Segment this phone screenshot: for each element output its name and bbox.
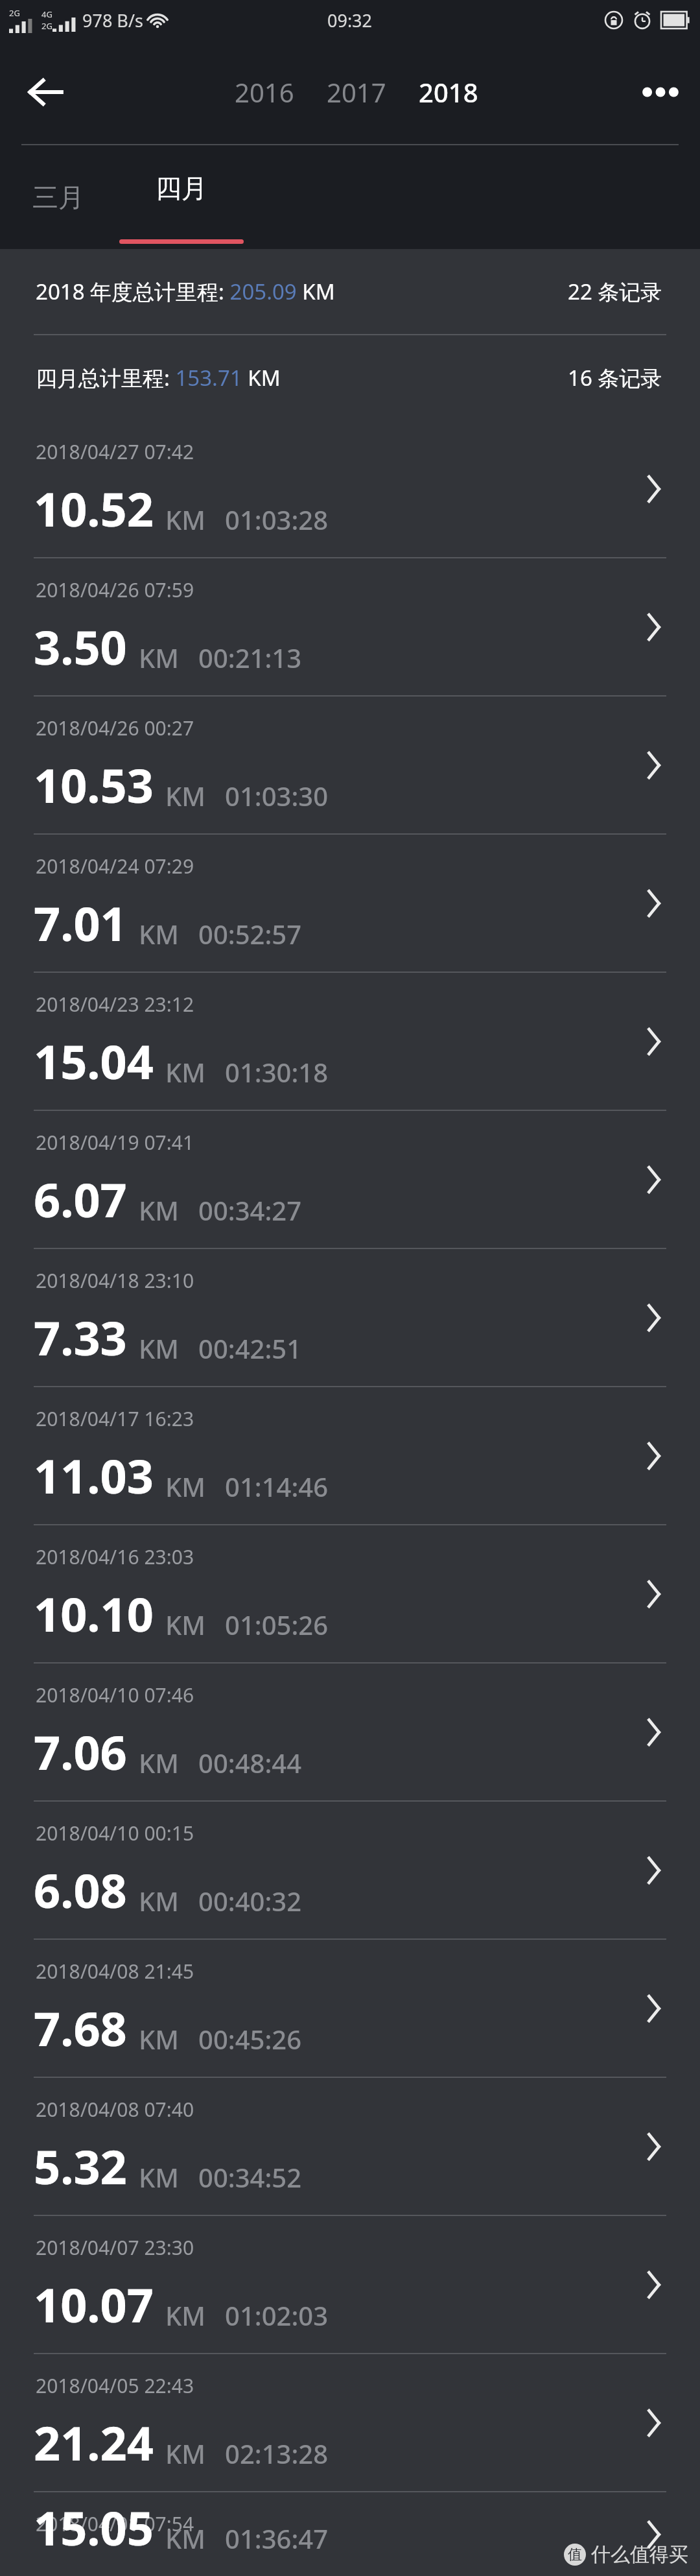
staticText: 2018/04/08 21:45: [36, 1958, 194, 1985]
staticText: 7.33: [34, 1306, 127, 1369]
staticText: 2018/04/10 00:15: [36, 1820, 194, 1846]
button[interactable]: 2018/04/10 00:15: [0, 1802, 700, 1938]
staticText: 四月总计里程: 153.71 KM: [36, 363, 281, 392]
staticText: 01:02:03: [225, 2298, 329, 2333]
button[interactable]: 2018/04/19 07:41: [0, 1111, 700, 1248]
staticText: 2018/04/08 07:40: [36, 2096, 194, 2123]
other: Open run detail: [638, 473, 670, 505]
staticText: 00:45:26: [198, 2021, 302, 2057]
staticText: 2017: [327, 75, 386, 110]
staticText: 00:40:32: [198, 1883, 302, 1918]
staticText: 16 条记录: [568, 363, 662, 392]
button[interactable]: 2017: [323, 68, 390, 116]
other: Open run detail: [638, 887, 670, 920]
staticText: 10.52: [34, 477, 154, 540]
other: Open run detail: [638, 1578, 670, 1610]
staticText: 00:34:52: [198, 2160, 302, 2195]
staticText: 三月: [32, 181, 84, 213]
staticText: KM: [139, 640, 179, 675]
staticText: 6.07: [34, 1167, 127, 1231]
staticText: 2018/04/16 23:03: [36, 1544, 194, 1570]
staticText: 2018/04/05 22:43: [36, 2372, 194, 2399]
button[interactable]: More options: [633, 64, 688, 120]
staticText: 11.03: [34, 1444, 154, 1507]
staticText: KM: [139, 916, 179, 951]
button[interactable]: 三月: [13, 145, 104, 249]
button[interactable]: 2018/04/23 23:12: [0, 973, 700, 1110]
staticText: 2018/04/10 07:46: [36, 1682, 194, 1708]
staticText: 2018/04/19 07:41: [36, 1129, 194, 1156]
staticText: 2016: [235, 75, 294, 110]
button[interactable]: 2018/04/07 23:30: [0, 2216, 700, 2353]
button[interactable]: 2018/04/26 07:59: [0, 558, 700, 695]
staticText: 10.07: [34, 2272, 154, 2336]
button[interactable]: Back: [18, 64, 74, 120]
staticText: 01:03:30: [225, 778, 329, 813]
button[interactable]: 2018/04/05 22:43: [0, 2354, 700, 2491]
other: Open run detail: [638, 1716, 670, 1748]
staticText: 2018 年度总计里程: 205.09 KM: [36, 277, 335, 306]
button[interactable]: 2016: [231, 68, 298, 116]
other: Open run detail: [638, 1163, 670, 1196]
button[interactable]: 2018/04/08 21:45: [0, 1940, 700, 2077]
button[interactable]: 2018/04/10 07:46: [0, 1664, 700, 1800]
staticText: 21.24: [34, 2411, 154, 2474]
staticText: 什么值得买: [591, 2542, 688, 2567]
other: Open run detail: [638, 749, 670, 781]
staticText: KM: [165, 1469, 205, 1504]
staticText: 978 B/s: [82, 8, 143, 32]
button[interactable]: 2018/04/01 07:54: [0, 2492, 700, 2576]
staticText: KM: [139, 2160, 179, 2195]
button[interactable]: 2018/04/17 16:23: [0, 1387, 700, 1524]
staticText: 7.01: [34, 891, 127, 955]
staticText: KM: [165, 2436, 205, 2471]
staticText: KM: [165, 1055, 205, 1090]
other: Open run detail: [638, 2269, 670, 2301]
other: Open run detail: [638, 1302, 670, 1334]
staticText: 22 条记录: [568, 277, 662, 306]
staticText: 00:52:57: [198, 916, 302, 951]
staticText: KM: [165, 2521, 205, 2556]
other: Open run detail: [638, 2518, 670, 2551]
staticText: 5.32: [34, 2134, 127, 2198]
staticText: 09:32: [327, 8, 373, 32]
staticText: 01:03:28: [225, 502, 329, 537]
staticText: KM: [139, 1331, 179, 1366]
other: Open run detail: [638, 611, 670, 643]
staticText: 2018: [419, 75, 478, 110]
button[interactable]: 2018/04/16 23:03: [0, 1525, 700, 1662]
staticText: 2G: [41, 20, 52, 32]
other: Open run detail: [638, 1854, 670, 1887]
button[interactable]: 四月总计里程: 153.71 KM: [0, 335, 700, 420]
button[interactable]: 四月: [117, 145, 246, 249]
staticText: KM: [165, 2298, 205, 2333]
staticText: 00:34:27: [198, 1193, 302, 1228]
staticText: KM: [139, 1883, 179, 1918]
staticText: 00:42:51: [198, 1331, 302, 1366]
button[interactable]: 2018: [415, 68, 482, 116]
button[interactable]: 2018/04/26 00:27: [0, 697, 700, 833]
staticText: 值: [568, 2546, 582, 2564]
staticText: 15.04: [34, 1029, 154, 1093]
staticText: 2018/04/23 23:12: [36, 991, 194, 1018]
staticText: 10.10: [34, 1582, 154, 1645]
button[interactable]: 2018/04/08 07:40: [0, 2078, 700, 2215]
staticText: 6.08: [34, 1858, 127, 1922]
button[interactable]: 2018/04/18 23:10: [0, 1249, 700, 1386]
staticText: 2018/04/26 07:59: [36, 577, 194, 603]
staticText: 4G: [41, 8, 52, 20]
button[interactable]: 2018 年度总计里程: 205.09 KM: [0, 249, 700, 334]
staticText: 2018/04/18 23:10: [36, 1267, 194, 1294]
button[interactable]: 2018/04/24 07:29: [0, 835, 700, 972]
staticText: 01:36:47: [225, 2521, 329, 2556]
staticText: 7.68: [34, 1996, 127, 2060]
button[interactable]: 2018/04/27 07:42: [0, 420, 700, 557]
staticText: 2018/04/27 07:42: [36, 438, 194, 465]
staticText: 2018/04/24 07:29: [36, 853, 194, 879]
other: Open run detail: [638, 2130, 670, 2163]
staticText: 3.50: [34, 615, 127, 678]
staticText: 7.06: [34, 1720, 127, 1783]
staticText: 10.53: [34, 753, 154, 817]
staticText: 四月: [156, 172, 207, 204]
staticText: 2G: [9, 7, 20, 19]
